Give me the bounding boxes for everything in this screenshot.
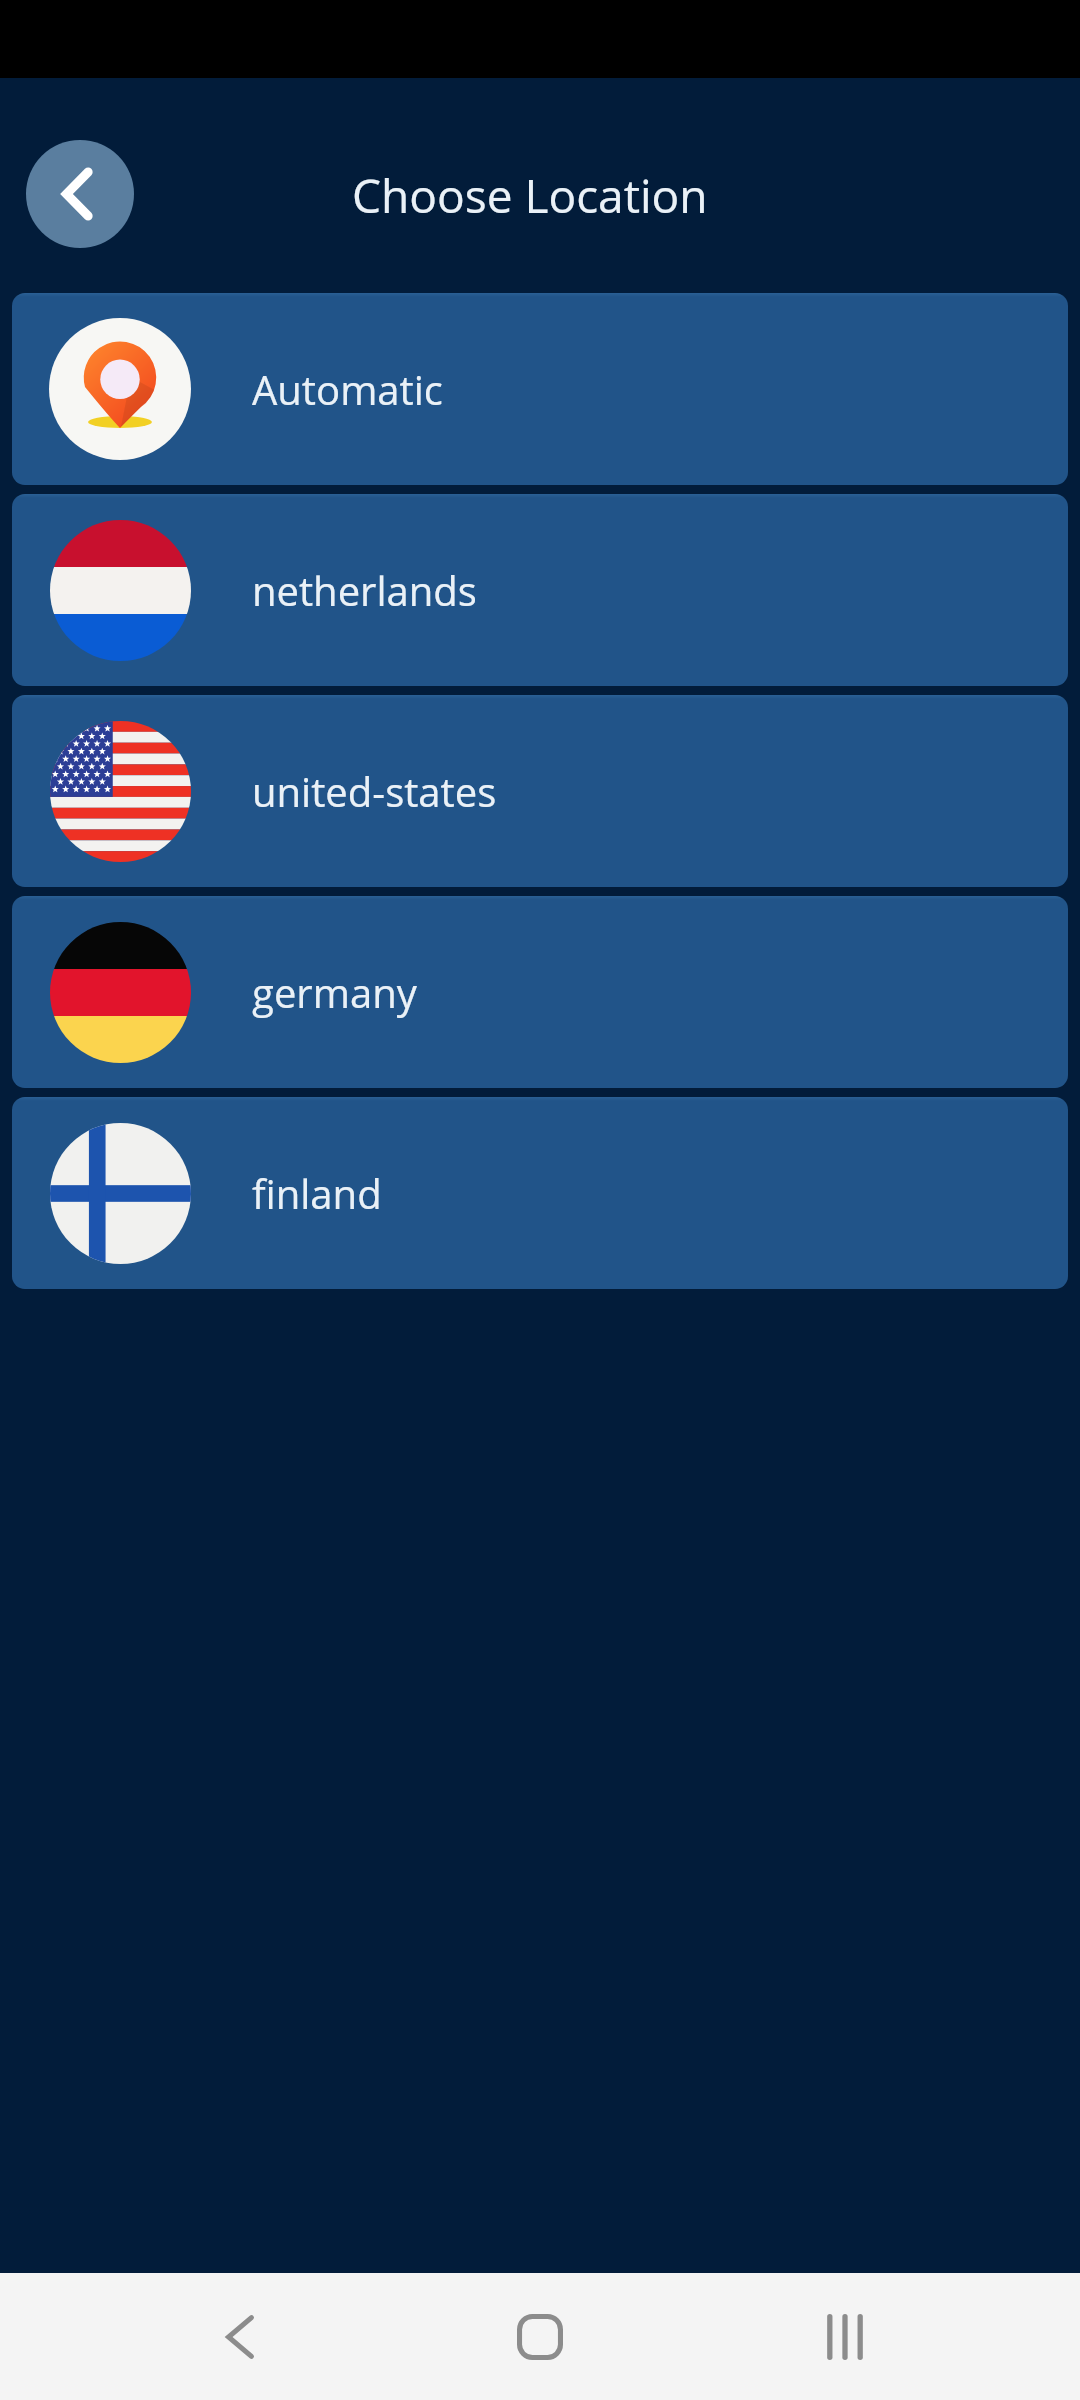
button[interactable]: Recent apps (790, 2273, 900, 2400)
button[interactable]: finland (12, 1097, 1068, 1289)
button[interactable]: Back (185, 2273, 295, 2400)
button[interactable]: Home (485, 2273, 595, 2400)
button[interactable]: germany (12, 896, 1068, 1088)
staticText: netherlands (252, 563, 477, 617)
staticText: finland (252, 1166, 382, 1220)
staticText: Choose Location (352, 164, 708, 227)
button[interactable]: united-states (12, 695, 1068, 887)
button[interactable]: Automatic (12, 293, 1068, 485)
staticText: Automatic (252, 362, 443, 416)
staticText: germany (252, 965, 417, 1019)
button[interactable]: netherlands (12, 494, 1068, 686)
staticText: united-states (252, 764, 497, 818)
button[interactable]: Navigate back (26, 140, 134, 248)
